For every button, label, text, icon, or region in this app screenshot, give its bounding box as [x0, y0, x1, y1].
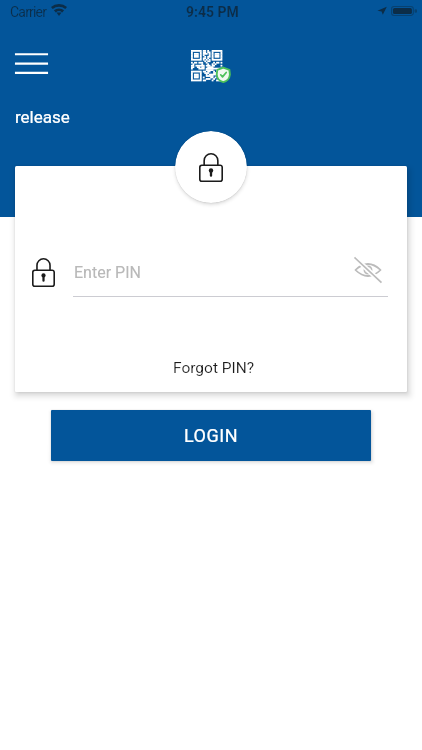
staticText: release [15, 107, 70, 127]
staticText: Carrier [10, 4, 47, 20]
staticText: Forgot PIN? [173, 359, 255, 377]
button[interactable]: LOGIN [51, 410, 371, 461]
staticText: Enter PIN [74, 263, 141, 282]
button[interactable]: Toggle PIN visibility [351, 255, 385, 285]
button[interactable]: Forgot PIN? [168, 355, 260, 381]
staticText: 9:45 PM [186, 4, 239, 20]
button[interactable]: Menu [7, 45, 55, 81]
staticText: LOGIN [184, 425, 239, 446]
